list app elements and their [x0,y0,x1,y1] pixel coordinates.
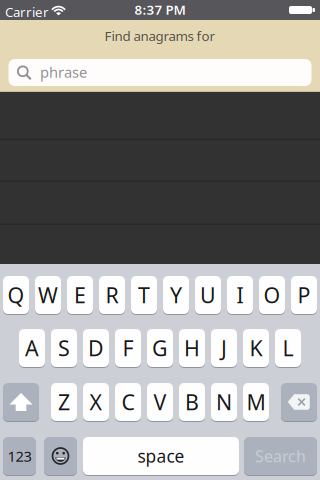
staticText: space [137,444,184,467]
button[interactable]: F [115,329,141,367]
staticText: Y [170,281,182,309]
button[interactable]: N [211,383,237,421]
button[interactable]: Search [244,437,317,475]
staticText: X [89,388,102,416]
button[interactable]: M [243,383,269,421]
button[interactable]: H [179,329,205,367]
button[interactable]: L [275,329,301,367]
button[interactable]: V [147,383,173,421]
button[interactable]: E [67,276,93,314]
button[interactable]: 123 [3,437,36,475]
button[interactable]: U [195,276,221,314]
button[interactable]: Delete [281,383,317,421]
staticText: M [246,388,265,416]
button[interactable]: O [259,276,285,314]
button[interactable]: C [115,383,141,421]
button[interactable]: A [19,329,45,367]
staticText: F [122,334,133,362]
button[interactable]: Y [163,276,189,314]
button[interactable]: R [99,276,125,314]
button[interactable]: K [243,329,269,367]
staticText: G [152,334,168,362]
staticText: U [200,281,216,309]
button[interactable]: W [35,276,61,314]
staticText: H [184,334,200,362]
staticText: phrase [40,62,87,82]
staticText: D [88,334,104,362]
staticText: Find anagrams for [104,27,215,45]
staticText: Carrier [5,3,49,21]
staticText: P [297,281,310,309]
staticText: V [153,388,166,416]
staticText: O [263,281,280,309]
staticText: B [185,388,199,416]
button[interactable]: Shift [3,383,39,421]
staticText: N [216,388,232,416]
button[interactable]: G [147,329,173,367]
staticText: J [221,334,227,362]
staticText: Z [58,388,70,416]
staticText: L [282,334,293,362]
staticText: C [121,388,134,416]
staticText: K [249,334,262,362]
button[interactable]: phrase [8,59,311,86]
staticText: I [236,281,243,309]
button[interactable]: D [83,329,109,367]
staticText: A [25,334,39,362]
staticText: Search [255,445,306,467]
staticText: T [138,281,150,309]
button[interactable]: P [291,276,317,314]
staticText: S [58,334,70,362]
button[interactable]: J [211,329,237,367]
button[interactable]: Q [3,276,29,314]
staticText: 123 [7,446,31,466]
staticText: 8:37 PM [134,1,185,18]
button[interactable]: I [227,276,253,314]
staticText: E [74,281,86,309]
button[interactable]: space [83,437,239,475]
button[interactable]: T [131,276,157,314]
staticText: W [38,281,58,309]
button[interactable]: Z [51,383,77,421]
button[interactable]: X [83,383,109,421]
staticText: R [105,281,118,309]
button[interactable]: Emoji [44,437,77,475]
staticText: Q [7,281,24,309]
button[interactable]: S [51,329,77,367]
button[interactable]: B [179,383,205,421]
